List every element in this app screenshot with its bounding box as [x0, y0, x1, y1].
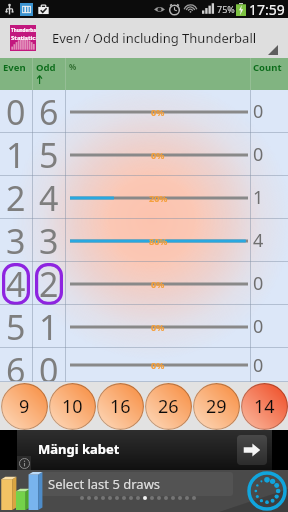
button[interactable]: Count — [251, 58, 288, 90]
button[interactable]: 26 — [145, 383, 192, 430]
staticText: 29 — [206, 394, 227, 419]
staticText: 0 — [6, 90, 26, 132]
staticText: 0 — [253, 142, 264, 167]
staticText: 5 — [39, 132, 59, 175]
staticText: 14 — [254, 394, 275, 419]
staticText: Even / Odd including Thunderball — [52, 29, 257, 47]
staticText: 3 — [6, 218, 26, 261]
staticText: 2 — [6, 175, 26, 218]
button[interactable]: 2 — [0, 176, 288, 219]
staticText: Mängi kabet — [38, 440, 120, 458]
button[interactable]: Even — [0, 58, 32, 90]
staticText: 10 — [62, 394, 83, 419]
staticText: 0 — [253, 353, 264, 378]
staticText: 26 — [158, 394, 179, 419]
button[interactable]: 16 — [97, 383, 144, 430]
staticText: Count — [253, 61, 282, 74]
staticText: 1 — [253, 185, 264, 210]
staticText: 16 — [110, 394, 131, 419]
staticText: % — [69, 61, 77, 72]
button[interactable]: Select last 5 draws — [40, 472, 233, 496]
button[interactable]: 4 — [0, 262, 288, 305]
staticText: 5 — [6, 304, 26, 347]
staticText: 0 — [253, 271, 264, 296]
button[interactable]: Mängi kabet — [17, 430, 272, 470]
staticText: 20% — [149, 192, 168, 204]
staticText: 0 — [39, 347, 59, 381]
staticText: 80% — [149, 235, 168, 247]
staticText: 0% — [151, 106, 165, 118]
button[interactable]: Odd — [33, 58, 65, 90]
button[interactable]: % — [66, 58, 250, 90]
staticText: 4 — [253, 228, 264, 253]
staticText: Thunderball — [11, 27, 36, 33]
button[interactable]: 1 — [0, 133, 288, 176]
staticText: 6 — [6, 347, 26, 381]
button[interactable]: 0 — [0, 90, 288, 133]
staticText: 0% — [151, 359, 165, 371]
button[interactable]: Thunderball — [0, 18, 288, 58]
button[interactable]: 9 — [1, 383, 48, 430]
staticText: Statistics — [11, 34, 36, 42]
other: Loading — [247, 471, 287, 511]
button[interactable]: 5 — [0, 305, 288, 348]
staticText: 0 — [253, 314, 264, 339]
staticText: 0 — [253, 99, 264, 124]
staticText: 4 — [6, 261, 26, 304]
staticText: 75% — [217, 3, 235, 15]
staticText: 0% — [151, 278, 165, 290]
button[interactable]: Open ad — [237, 435, 267, 465]
staticText: 2 — [39, 261, 59, 304]
staticText: 17:59 — [249, 0, 285, 18]
button[interactable]: 14 — [241, 383, 288, 430]
staticText: 9 — [19, 394, 30, 419]
staticText: 0% — [151, 149, 165, 161]
staticText: Even — [3, 61, 26, 74]
button[interactable]: Ad info — [17, 456, 31, 470]
staticText: 1 — [6, 132, 26, 175]
staticText: 6 — [39, 90, 59, 132]
staticText: 4 — [39, 175, 59, 218]
staticText: 0% — [151, 321, 165, 333]
button[interactable]: 6 — [0, 348, 288, 382]
button[interactable]: 10 — [49, 383, 96, 430]
button[interactable]: 3 — [0, 219, 288, 262]
staticText: Select last 5 draws — [48, 475, 161, 493]
staticText: 1 — [39, 304, 59, 347]
staticText: 3 — [39, 218, 59, 261]
staticText: Odd — [36, 61, 56, 74]
button[interactable]: 29 — [193, 383, 240, 430]
